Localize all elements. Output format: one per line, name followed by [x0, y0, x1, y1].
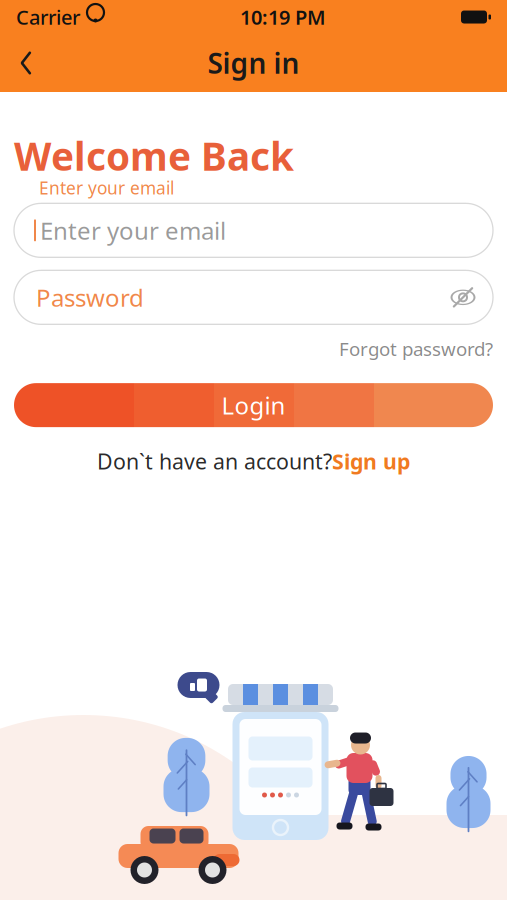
button[interactable]: Sign up: [332, 447, 410, 475]
staticText: Password: [36, 281, 144, 313]
staticText: Sign up: [332, 447, 410, 475]
staticText: Sign in: [207, 44, 299, 82]
button[interactable]: Show password: [443, 277, 483, 317]
button[interactable]: Back: [0, 34, 52, 92]
staticText: Enter your email: [40, 214, 226, 246]
staticText: Don`t have an account?: [97, 447, 332, 475]
staticText: 10:19 PM: [240, 4, 326, 30]
button[interactable]: Forgot password?: [339, 332, 493, 365]
staticText: Forgot password?: [339, 336, 493, 361]
staticText: Login: [221, 389, 285, 421]
staticText: Enter your email: [39, 176, 174, 199]
staticText: Carrier: [16, 4, 80, 30]
button[interactable]: Login: [14, 383, 493, 427]
staticText: Welcome Back: [14, 130, 294, 181]
